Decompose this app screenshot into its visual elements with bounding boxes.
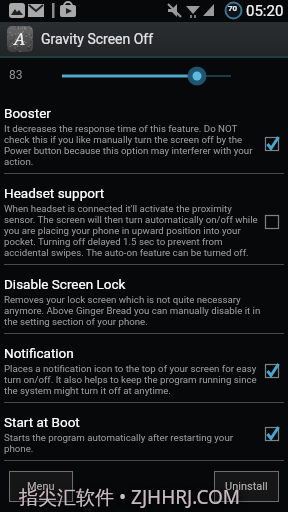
staticText: Booster (4, 105, 51, 121)
staticText: Disable Screen Lock (4, 276, 126, 292)
button[interactable]: Disable Screen Lock (0, 265, 288, 334)
staticText: Places a notification icon to the top of… (4, 363, 257, 396)
button[interactable]: Notification (0, 334, 288, 403)
button[interactable]: Headset support (0, 174, 288, 265)
staticText: It decreases the response time of this f… (4, 123, 253, 167)
staticText: Removes your lock screen which is not qu… (4, 294, 261, 327)
staticText: Menu (27, 480, 55, 493)
staticText: 指尖汇软件 • ZJHHRJ.COM (19, 484, 241, 510)
staticText: Headset support (4, 185, 105, 201)
button[interactable]: Start at Boot (0, 403, 288, 461)
staticText: When headset is connected it'll activate… (4, 203, 258, 258)
staticText: A (14, 28, 26, 50)
staticText: 83 (9, 68, 23, 82)
staticText: Gravity Screen Off (41, 31, 154, 47)
staticText: 70 (228, 4, 238, 13)
staticText: 05:20 (246, 2, 284, 20)
staticText: Uninstall (225, 480, 268, 493)
button[interactable]: Uninstall (214, 471, 279, 502)
button[interactable]: Booster (0, 94, 288, 174)
button[interactable]: A (0, 22, 288, 56)
staticText: Start at Boot (4, 414, 80, 430)
staticText: Starts the program automatically after r… (4, 432, 234, 454)
button[interactable]: Menu (9, 471, 73, 502)
button[interactable]: 83 (0, 56, 288, 94)
staticText: Notification (4, 345, 74, 361)
